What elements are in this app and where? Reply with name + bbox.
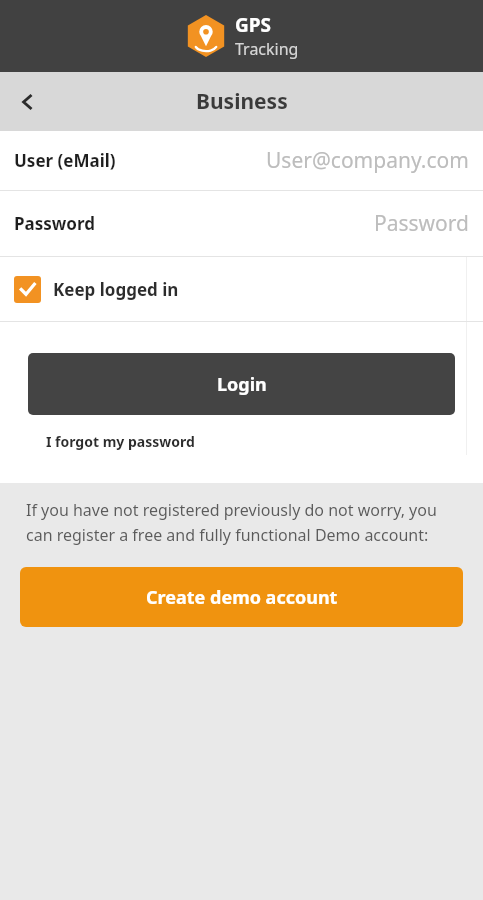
staticText: Password [374,209,469,238]
staticText: Tracking [235,38,299,60]
staticText: Login [217,372,267,397]
staticText: If you have not registered previously do… [26,499,455,545]
button[interactable]: Back [0,74,56,130]
button[interactable]: Login [28,353,455,415]
staticText: I forgot my password [46,432,195,451]
button[interactable]: User (eMail) [0,131,483,190]
staticText: GPS [235,12,272,38]
button[interactable]: Keep logged in [0,257,483,321]
staticText: Password [14,212,95,235]
staticText: Create demo account [146,585,338,610]
button[interactable]: Create demo account [20,567,463,627]
staticText: User@company.com [266,146,469,175]
button[interactable]: Password [0,191,483,256]
staticText: Keep logged in [53,278,179,301]
button[interactable]: I forgot my password [44,428,197,455]
staticText: User (eMail) [14,149,116,172]
staticText: Business [196,87,288,116]
